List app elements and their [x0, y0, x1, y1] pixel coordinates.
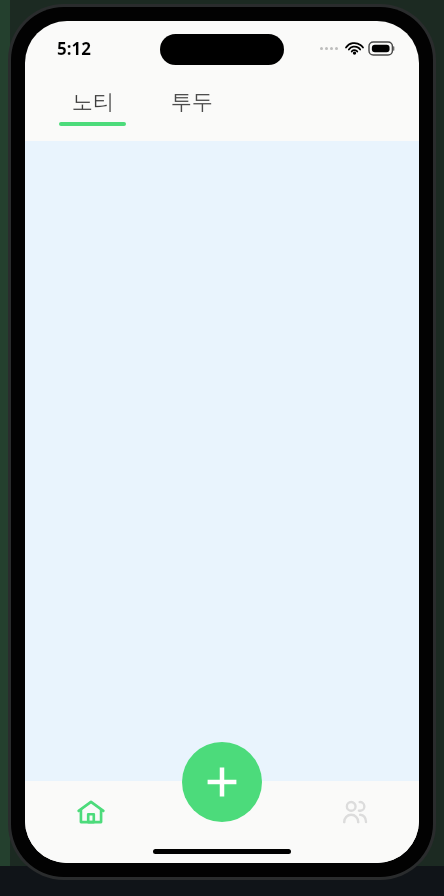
button[interactable]: 노티 — [47, 75, 138, 126]
staticText: 5:12 — [57, 37, 91, 60]
button[interactable]: Add — [182, 742, 262, 822]
staticText: 노티 — [72, 89, 114, 115]
button[interactable]: 투두 — [146, 75, 237, 126]
staticText: 투두 — [171, 89, 213, 115]
button[interactable]: Home — [25, 789, 157, 835]
button[interactable]: Friends — [288, 789, 419, 835]
